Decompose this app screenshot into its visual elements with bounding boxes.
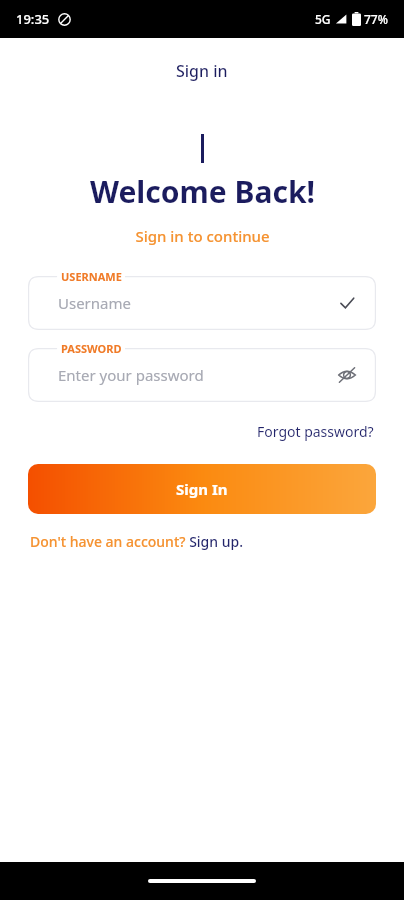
staticText: USERNAME xyxy=(61,269,122,284)
staticText: Sign in to continue xyxy=(135,226,270,246)
staticText: 5G xyxy=(315,11,331,27)
button[interactable]: Sign in xyxy=(164,58,240,84)
staticText: Welcome Back! xyxy=(90,171,315,212)
staticText: Username xyxy=(58,293,131,313)
button[interactable]: Show password xyxy=(334,362,360,388)
button[interactable]: Username valid xyxy=(334,290,360,316)
button[interactable]: Forgot password? xyxy=(255,418,376,445)
button[interactable]: Don't have an account? Sign up. xyxy=(30,530,243,553)
staticText: Don't have an account? Sign up. xyxy=(30,532,243,551)
staticText: 77% xyxy=(364,11,388,27)
button[interactable]: Enter your password xyxy=(28,348,376,402)
staticText: Forgot password? xyxy=(257,422,374,441)
button[interactable]: Username xyxy=(28,276,376,330)
staticText: Sign In xyxy=(176,479,228,499)
button[interactable]: Sign In xyxy=(28,464,376,514)
staticText: Enter your password xyxy=(58,365,204,385)
staticText: PASSWORD xyxy=(61,341,122,356)
staticText: Sign in xyxy=(176,60,228,82)
staticText: 19:35 xyxy=(16,10,50,28)
